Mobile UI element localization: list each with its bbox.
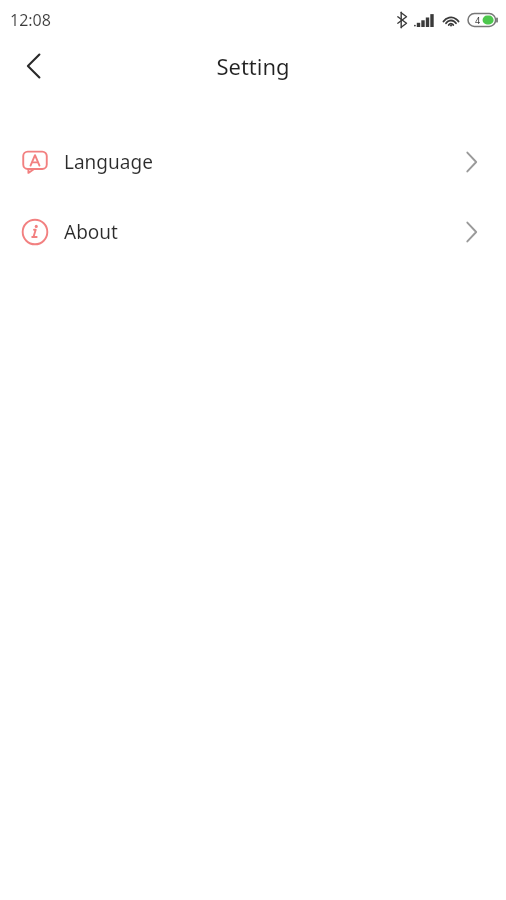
button[interactable]: Language [0, 127, 506, 197]
staticText: 12:08 [10, 9, 51, 31]
button[interactable]: About [0, 197, 506, 267]
staticText: Setting [0, 51, 506, 81]
button[interactable]: Back [12, 44, 56, 88]
staticText: Language [64, 149, 153, 175]
staticText: About [64, 219, 118, 245]
